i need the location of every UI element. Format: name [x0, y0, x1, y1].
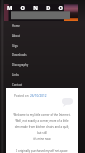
staticText: Links — [12, 73, 19, 77]
button[interactable]: Comments — [62, 98, 73, 107]
button[interactable]: Discography — [0, 60, 85, 70]
staticText: Discography — [12, 63, 29, 67]
staticText: Downloads — [12, 53, 27, 57]
button[interactable]: Gigs — [0, 41, 85, 51]
staticText: Welcome to my little corner of the Inter… — [8, 113, 76, 152]
staticText: Posted on — [14, 94, 30, 98]
button[interactable]: Contact — [0, 80, 85, 90]
staticText: MONDO — [7, 4, 72, 12]
button[interactable]: Links — [0, 70, 85, 80]
staticText: 26/10/2012 — [30, 94, 47, 98]
button[interactable]: Site banner — [4, 4, 78, 21]
staticText: About — [12, 34, 20, 38]
staticText: Gigs — [12, 44, 18, 48]
button[interactable]: Posted on — [14, 94, 47, 98]
button[interactable]: About — [0, 31, 85, 41]
button[interactable]: Downloads — [0, 50, 85, 60]
staticText: Home — [12, 24, 20, 28]
staticText: Contact — [12, 83, 23, 87]
button[interactable]: Home — [0, 21, 85, 31]
